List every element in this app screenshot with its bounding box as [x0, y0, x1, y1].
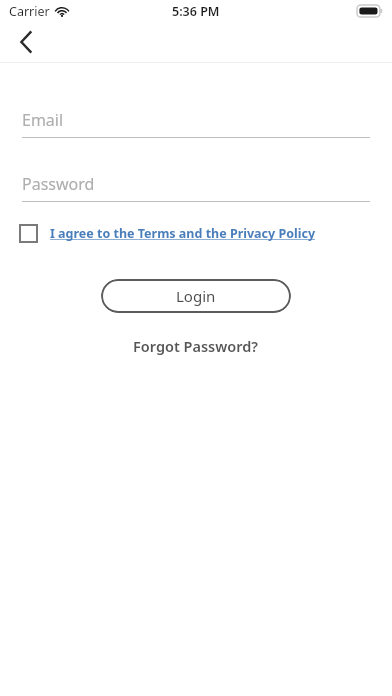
button[interactable]: Forgot Password? [0, 336, 392, 356]
button[interactable]: Password [22, 171, 370, 202]
button[interactable]: Login [101, 279, 291, 313]
staticText: Login [176, 286, 216, 306]
staticText: 5:36 PM [172, 3, 220, 20]
staticText: Carrier [9, 3, 50, 20]
staticText: Email [22, 109, 64, 131]
button[interactable]: Email [22, 107, 370, 138]
button[interactable]: I agree to the Terms and the Privacy Pol… [19, 224, 316, 243]
button[interactable]: Back [4, 22, 48, 62]
staticText: Forgot Password? [133, 336, 259, 356]
staticText: I agree to the Terms and the Privacy Pol… [50, 225, 316, 242]
staticText: Password [22, 173, 95, 195]
